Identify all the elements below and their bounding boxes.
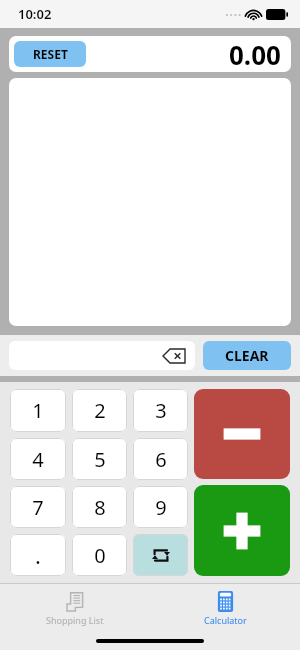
staticText: 0 [94, 542, 106, 569]
button[interactable]: 9 [133, 486, 188, 528]
staticText: 10:02 [18, 5, 52, 23]
button[interactable]: 3 [133, 389, 188, 432]
button[interactable]: CLEAR [203, 341, 291, 370]
button[interactable]: 2 [72, 389, 127, 432]
button[interactable]: 1 [10, 389, 66, 432]
staticText: 5 [94, 446, 106, 473]
staticText: 4 [32, 446, 44, 473]
staticText: 6 [155, 446, 167, 473]
button[interactable]: 5 [72, 438, 127, 480]
other: Backspace [163, 349, 185, 363]
button[interactable]: Add [194, 485, 290, 576]
button[interactable]: 6 [133, 438, 188, 480]
staticText: 8 [94, 494, 106, 521]
button[interactable]: 7 [10, 486, 66, 528]
staticText: 3 [155, 397, 167, 424]
button[interactable]: 0 [72, 534, 127, 576]
staticText: 7 [32, 494, 44, 521]
button[interactable]: Shopping List [0, 584, 150, 632]
staticText: 9 [155, 494, 167, 521]
staticText: 0.00 [229, 37, 281, 72]
button[interactable]: Backspace [9, 341, 195, 370]
staticText: CLEAR [225, 346, 269, 365]
staticText: 1 [32, 397, 44, 424]
button[interactable]: 4 [10, 438, 66, 480]
staticText: . [35, 540, 41, 570]
staticText: 2 [94, 397, 106, 424]
staticText: Shopping List [46, 614, 104, 626]
button[interactable]: Calculator [150, 584, 300, 632]
button[interactable]: 8 [72, 486, 127, 528]
staticText: RESET [33, 46, 68, 62]
button[interactable]: Swap [133, 534, 188, 576]
button[interactable]: RESET [14, 41, 86, 67]
button[interactable]: Subtract [194, 389, 290, 479]
button[interactable]: . [10, 534, 66, 576]
staticText: Calculator [204, 614, 247, 626]
